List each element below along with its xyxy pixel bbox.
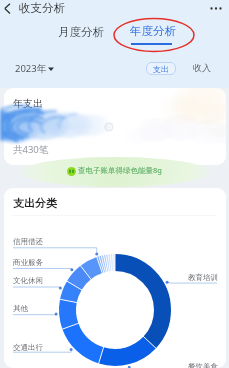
button[interactable]: 查电子账单得绿色能量8g xyxy=(20,163,210,181)
staticText: 查电子账单得绿色能量8g xyxy=(78,165,162,175)
staticText: 2023年 xyxy=(15,62,47,75)
staticText: 餐饮美食 xyxy=(188,362,218,368)
button[interactable]: 收入 xyxy=(188,60,214,76)
button[interactable]: 教育培训 xyxy=(188,273,218,284)
staticText: 商业服务 xyxy=(13,258,43,267)
button[interactable]: 支出 xyxy=(146,62,176,75)
staticText: 交通出行 xyxy=(13,343,43,352)
staticText: 共430笔 xyxy=(13,143,49,156)
staticText: 支出 xyxy=(153,64,169,74)
staticText: 教育培训 xyxy=(188,273,218,282)
staticText: 文化休闲 xyxy=(13,276,43,285)
button[interactable]: 文化休闲 xyxy=(13,276,43,287)
button[interactable]: More options xyxy=(205,0,227,22)
button[interactable]: 信用借还 xyxy=(13,237,43,248)
staticText: 信用借还 xyxy=(13,237,43,246)
button[interactable]: 年支出 xyxy=(4,88,226,165)
button[interactable]: 交通出行 xyxy=(13,343,43,354)
button[interactable]: 商业服务 xyxy=(13,258,43,269)
button[interactable]: 年度分析 xyxy=(124,22,182,48)
staticText: 收支分析 xyxy=(19,1,65,15)
staticText: 其他 xyxy=(13,304,28,313)
button[interactable]: 其他 xyxy=(13,304,28,315)
staticText: 收入 xyxy=(193,62,211,73)
button[interactable]: Back xyxy=(0,0,18,18)
staticText: 支出分类 xyxy=(13,196,57,210)
staticText: 年度分析 xyxy=(130,24,176,38)
staticText: 月度分析 xyxy=(58,25,104,39)
button[interactable]: 月度分析 xyxy=(52,22,110,42)
staticText: 年支出 xyxy=(13,97,43,110)
button[interactable]: 餐饮美食 xyxy=(188,362,218,368)
button[interactable]: 2023年 xyxy=(15,56,59,76)
